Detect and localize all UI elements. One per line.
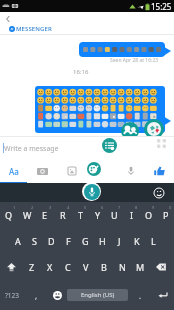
staticText: U (111, 209, 118, 221)
staticText: L (151, 235, 156, 247)
button[interactable]: V (77, 254, 95, 280)
staticText: K (134, 235, 140, 247)
button[interactable]: C (59, 254, 77, 280)
button[interactable]: Enter (152, 280, 174, 310)
staticText: M (136, 261, 145, 273)
button[interactable]: F (60, 228, 77, 254)
staticText: 6 (101, 205, 104, 210)
staticText: G (82, 235, 89, 247)
staticText: 3 (49, 205, 52, 210)
button[interactable]: Globe (144, 119, 164, 139)
staticText: English (US) (81, 291, 115, 299)
staticText: 1 (13, 205, 16, 210)
staticText: 15:25 (151, 1, 172, 12)
button[interactable]: R (54, 202, 72, 228)
button[interactable]: Backspace (149, 254, 174, 280)
button[interactable]: Z (23, 254, 41, 280)
staticText: X (47, 261, 53, 273)
button[interactable]: Q (0, 202, 18, 228)
button[interactable]: K (128, 228, 145, 254)
staticText: Y (95, 209, 101, 221)
button[interactable]: P (157, 202, 174, 228)
button[interactable]: E (36, 202, 54, 228)
staticText: T (78, 209, 84, 221)
staticText: 16:16 (73, 68, 89, 76)
button[interactable]: X (41, 254, 59, 280)
button[interactable]: English (US) (67, 289, 128, 301)
staticText: 8 (135, 205, 138, 210)
button[interactable]: I (123, 202, 140, 228)
staticText: , (35, 290, 38, 301)
button[interactable]: B (95, 254, 113, 280)
button[interactable]: T (72, 202, 89, 228)
staticText: . (139, 290, 142, 301)
staticText: E (42, 209, 48, 221)
button[interactable]: A (9, 228, 26, 254)
staticText: 4 (67, 205, 70, 210)
staticText: P (163, 209, 169, 221)
staticText: I (130, 209, 134, 221)
button[interactable]: Camera (33, 162, 51, 180)
staticText: 2 (31, 205, 34, 210)
button[interactable]: D (43, 228, 60, 254)
button[interactable]: J (111, 228, 128, 254)
button[interactable]: Friends (121, 122, 139, 140)
staticText: R (60, 209, 66, 221)
staticText: B (101, 261, 107, 273)
button[interactable]: W (18, 202, 36, 228)
button[interactable]: , (23, 280, 49, 310)
staticText: 5 (84, 205, 87, 210)
staticText: F (66, 235, 71, 247)
button[interactable]: Like (150, 162, 168, 180)
staticText: D (48, 235, 55, 247)
button[interactable]: Emoji (153, 187, 165, 199)
button[interactable]: Aa (5, 162, 23, 180)
staticText: S (32, 235, 37, 247)
button[interactable]: Voice message (122, 162, 140, 180)
staticText: A (15, 235, 21, 247)
button[interactable]: Stickers (86, 161, 101, 176)
button[interactable]: S (26, 228, 43, 254)
staticText: 9 (152, 205, 155, 210)
staticText: 0 (169, 205, 172, 210)
button[interactable]: Shift (0, 254, 23, 280)
button[interactable]: . (128, 280, 152, 310)
staticText: V (83, 261, 89, 273)
button[interactable]: Voice input (82, 182, 101, 201)
staticText: 7 (118, 205, 121, 210)
button[interactable]: M (131, 254, 149, 280)
button[interactable]: U (106, 202, 123, 228)
staticText: H (99, 235, 106, 247)
button[interactable]: O (140, 202, 157, 228)
button[interactable]: H (94, 228, 111, 254)
staticText: Write a message (4, 144, 59, 154)
button[interactable]: Emoji keyboard (49, 280, 66, 310)
button[interactable]: Menu (102, 138, 117, 153)
button[interactable]: ?123 (0, 280, 23, 310)
staticText: W (23, 209, 32, 221)
staticText: Q (5, 209, 13, 221)
button[interactable]: Gallery (63, 162, 81, 180)
staticText: Seen Apr 28 at 16:23 (110, 57, 159, 64)
staticText: J (118, 235, 121, 247)
staticText: MESSENGER (16, 25, 52, 33)
staticText: Z (29, 261, 35, 273)
button[interactable]: Back (1, 12, 14, 25)
button[interactable]: L (145, 228, 162, 254)
button[interactable]: G (77, 228, 94, 254)
staticText: N (119, 261, 126, 273)
staticText: Aa (9, 166, 19, 177)
staticText: ?123 (5, 291, 19, 300)
staticText: C (65, 261, 71, 273)
button[interactable]: N (113, 254, 131, 280)
button[interactable]: Y (89, 202, 106, 228)
staticText: O (145, 209, 153, 221)
